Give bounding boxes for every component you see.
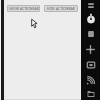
- button[interactable]: SHOW ACTIONBAR: [7, 5, 40, 12]
- button[interactable]: Location GPS: [86, 1, 96, 11]
- button[interactable]: Power: [85, 13, 97, 25]
- button[interactable]: Folder: [85, 89, 97, 100]
- button[interactable]: Screenshot: [85, 59, 97, 71]
- staticText: SHOW ACTIONBAR: [9, 7, 39, 11]
- button[interactable]: Cellular: [85, 74, 97, 86]
- button[interactable]: Rotate / D-pad: [84, 43, 97, 56]
- button[interactable]: HIDE ACTIONBAR: [44, 5, 78, 12]
- button[interactable]: Volume: [85, 28, 97, 40]
- staticText: HIDE ACTIONBAR: [47, 7, 75, 11]
